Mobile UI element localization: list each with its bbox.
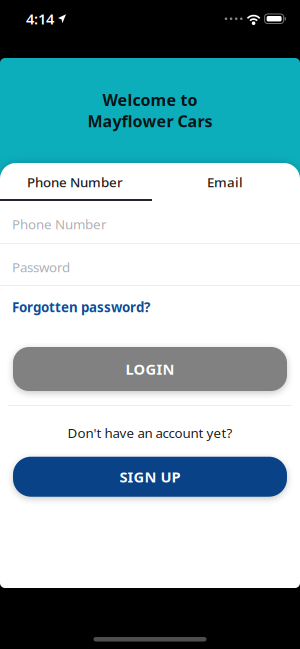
staticText: 4:14 <box>26 9 54 28</box>
button[interactable]: Phone Number <box>0 201 300 244</box>
button[interactable]: Password <box>0 244 300 286</box>
staticText: Forgotten password? <box>12 298 150 316</box>
staticText: Phone Number <box>12 215 107 233</box>
button[interactable]: LOGIN <box>13 347 287 391</box>
button[interactable]: Forgotten password? <box>0 286 300 328</box>
staticText: Welcome to <box>102 89 197 110</box>
staticText: Don't have an account yet? <box>67 424 232 442</box>
button[interactable]: Email <box>150 163 300 201</box>
staticText: Email <box>207 173 243 191</box>
staticText: Phone Number <box>27 173 123 191</box>
staticText: Mayflower Cars <box>87 110 212 132</box>
staticText: LOGIN <box>125 359 174 379</box>
staticText: Password <box>12 258 70 276</box>
button[interactable]: SIGN UP <box>13 457 287 497</box>
button[interactable]: Phone Number <box>0 163 150 201</box>
staticText: SIGN UP <box>119 467 180 486</box>
